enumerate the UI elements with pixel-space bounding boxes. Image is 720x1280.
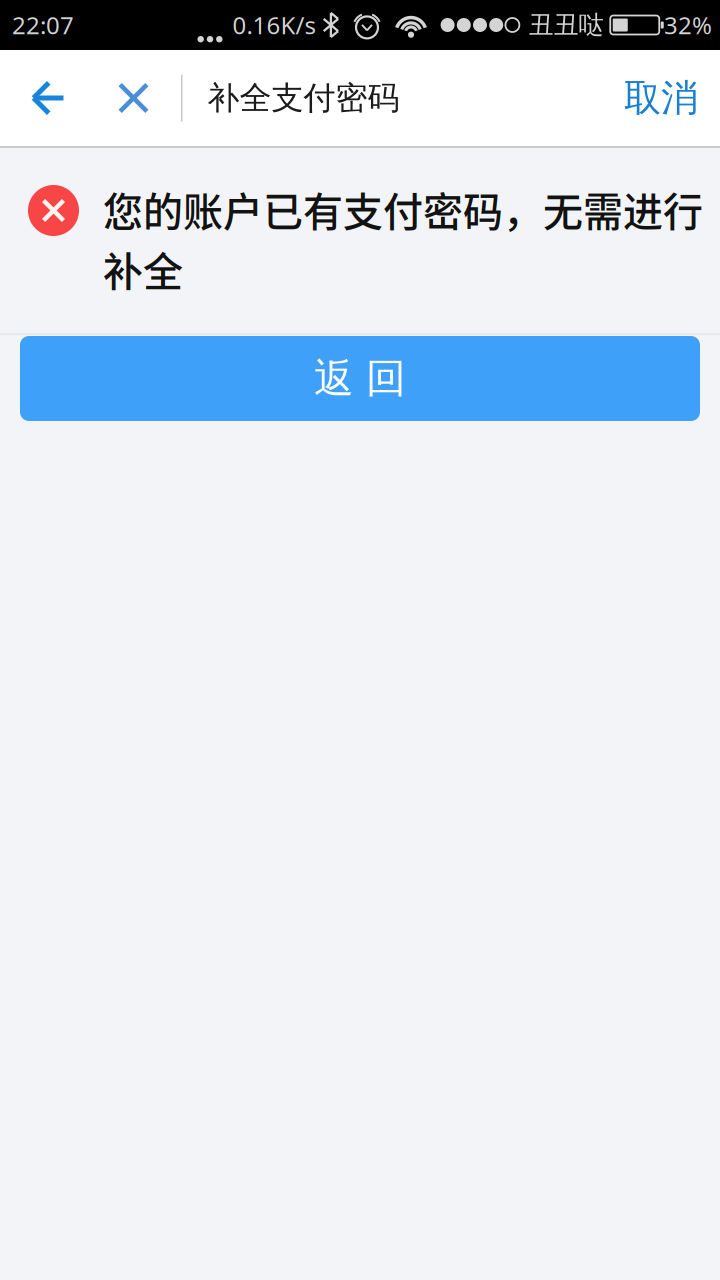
staticText: 您的账户已有支付密码，无需进行补全 <box>103 180 703 298</box>
staticText: 0.16K/s <box>232 9 315 41</box>
button[interactable]: 取消 <box>594 50 720 146</box>
button[interactable]: Close <box>96 50 171 146</box>
button[interactable]: Back <box>0 50 96 146</box>
staticText: 补全支付密码 <box>207 78 399 118</box>
staticText: 丑丑哒 <box>528 9 603 40</box>
button[interactable]: 返 回 <box>20 336 700 421</box>
staticText: 返 回 <box>314 354 406 403</box>
staticText: 22:07 <box>12 9 74 41</box>
staticText: 取消 <box>624 75 698 121</box>
staticText: 32% <box>664 9 712 41</box>
